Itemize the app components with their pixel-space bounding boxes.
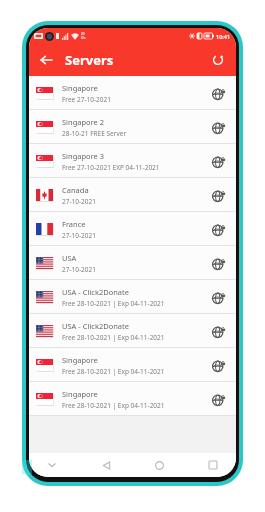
staticText: USA - Click2Donate [62, 287, 130, 297]
button[interactable]: Connect [208, 117, 228, 137]
staticText: USA - Click2Donate [62, 321, 130, 331]
staticText: 27-10-2021 [62, 197, 96, 206]
button[interactable]: Connect [208, 253, 228, 273]
staticText: 27-10-2021 [62, 231, 96, 240]
staticText: Free 28-10-2021 | Exp 04-11-2021 [62, 333, 165, 342]
button[interactable]: USA - Click2Donate [29, 314, 236, 348]
button[interactable]: USA [29, 246, 236, 280]
button[interactable]: France [29, 212, 236, 246]
button[interactable]: Connect [208, 151, 228, 171]
staticText: Free 28-10-2021 | Exp 04-11-2021 [62, 401, 165, 410]
button[interactable]: Connect [208, 389, 228, 409]
staticText: Free 27-10-2021 [62, 95, 111, 104]
button[interactable]: Connect [208, 219, 228, 239]
staticText: Free 28-10-2021 | Exp 04-11-2021 [62, 299, 165, 308]
button[interactable]: USA - Click2Donate [29, 280, 236, 314]
staticText: Free 28-10-2021 | Exp 04-11-2021 [62, 367, 165, 376]
button[interactable]: Refresh [207, 49, 229, 71]
staticText: France [62, 219, 86, 229]
button[interactable]: Singapore [29, 382, 236, 416]
button[interactable]: Back [97, 456, 115, 474]
button[interactable]: Singapore 3 [29, 144, 236, 178]
staticText: 27-10-2021 [62, 265, 96, 274]
button[interactable]: Home [150, 456, 168, 474]
staticText: 20 K/s [81, 32, 86, 40]
button[interactable]: Singapore [29, 348, 236, 382]
button[interactable]: Connect [208, 83, 228, 103]
staticText: Free 27-10-2021 EXP 04-11-2021 [62, 163, 160, 172]
button[interactable]: Singapore [29, 76, 236, 110]
staticText: 10:41 [216, 33, 231, 40]
button[interactable]: Singapore 2 [29, 110, 236, 144]
button[interactable]: Hide keyboard [43, 456, 61, 474]
button[interactable]: Connect [208, 321, 228, 341]
staticText: Singapore 2 [62, 117, 105, 127]
button[interactable]: Connect [208, 287, 228, 307]
staticText: Servers [65, 51, 114, 69]
staticText: Singapore [62, 355, 98, 365]
button[interactable]: Recent apps [204, 456, 222, 474]
button[interactable]: Canada [29, 178, 236, 212]
staticText: Singapore [62, 83, 98, 93]
staticText: Canada [62, 185, 89, 195]
button[interactable]: Connect [208, 355, 228, 375]
staticText: USA [62, 253, 77, 263]
button[interactable]: Connect [208, 185, 228, 205]
button[interactable]: Back [35, 49, 57, 71]
staticText: Singapore [62, 389, 98, 399]
staticText: 28-10-21 FREE Server [62, 129, 127, 138]
staticText: Singapore 3 [62, 151, 105, 161]
